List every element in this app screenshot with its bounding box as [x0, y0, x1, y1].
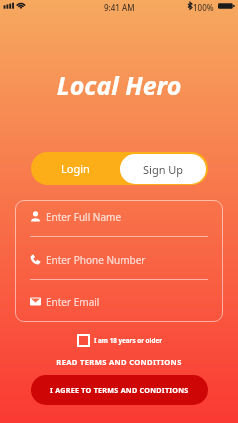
- staticText: I am 18 years or older: [94, 336, 162, 345]
- staticText: 100%: [193, 2, 214, 13]
- button[interactable]: Sign Up: [120, 154, 206, 184]
- button[interactable]: READ TERMS AND CONDITIONS: [0, 357, 238, 367]
- staticText: Sign Up: [143, 162, 184, 177]
- staticText: 9:41 AM: [104, 2, 135, 13]
- button[interactable]: I AGREE TO TERMS AND CONDITIONS: [31, 375, 208, 405]
- staticText: Enter Phone Number: [46, 253, 146, 267]
- staticText: Enter Full Name: [46, 210, 122, 224]
- button[interactable]: Login: [31, 152, 120, 185]
- button[interactable]: Enter Phone Number: [15, 247, 223, 272]
- button[interactable]: I am 18 years or older: [77, 334, 162, 347]
- staticText: Local Hero: [0, 68, 238, 102]
- staticText: Login: [61, 161, 90, 176]
- staticText: Enter Email: [46, 295, 100, 309]
- button[interactable]: Enter Full Name: [15, 204, 223, 229]
- staticText: I AGREE TO TERMS AND CONDITIONS: [50, 385, 189, 395]
- button[interactable]: Enter Email: [15, 289, 223, 314]
